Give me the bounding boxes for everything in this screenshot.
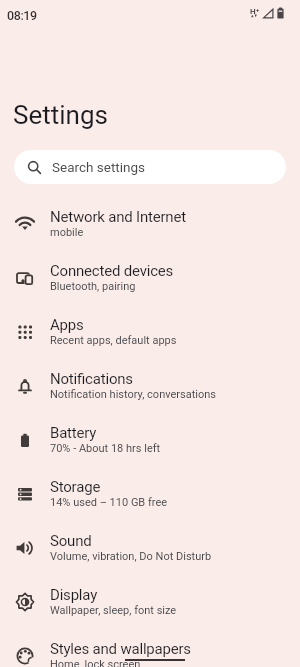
staticText: Volume, vibration, Do Not Disturb [50, 550, 212, 563]
staticText: Notification history, conversations [50, 388, 216, 401]
button[interactable]: Apps [0, 305, 300, 359]
button[interactable]: Sound [0, 521, 300, 575]
staticText: Search settings [52, 159, 146, 175]
staticText: 14% used – 110 GB free [50, 496, 168, 509]
staticText: H [250, 7, 256, 16]
button[interactable]: Display [0, 575, 300, 629]
button[interactable]: Search settings [14, 150, 286, 184]
staticText: 08:19 [7, 8, 37, 23]
staticText: Display [50, 586, 98, 604]
button[interactable]: Styles and wallpapers [0, 629, 300, 667]
button[interactable]: Battery [0, 413, 300, 467]
staticText: Recent apps, default apps [50, 334, 177, 347]
staticText: Battery [50, 424, 97, 442]
staticText: + [256, 6, 260, 13]
staticText: Notifications [50, 370, 133, 388]
staticText: Bluetooth, pairing [50, 280, 136, 293]
staticText: 70% - About 18 hrs left [50, 442, 161, 455]
staticText: Styles and wallpapers [50, 640, 191, 658]
staticText: Connected devices [50, 262, 174, 280]
staticText: Home, lock screen [50, 658, 141, 667]
staticText: Wallpaper, sleep, font size [50, 604, 177, 617]
staticText: mobile [50, 226, 84, 239]
staticText: Network and Internet [50, 208, 186, 226]
button[interactable]: Connected devices [0, 251, 300, 305]
staticText: Settings [13, 100, 108, 130]
button[interactable]: Network and Internet [0, 197, 300, 251]
button[interactable]: Storage [0, 467, 300, 521]
staticText: Storage [50, 478, 101, 496]
staticText: Sound [50, 532, 92, 550]
button[interactable]: Notifications [0, 359, 300, 413]
staticText: Apps [50, 316, 84, 334]
